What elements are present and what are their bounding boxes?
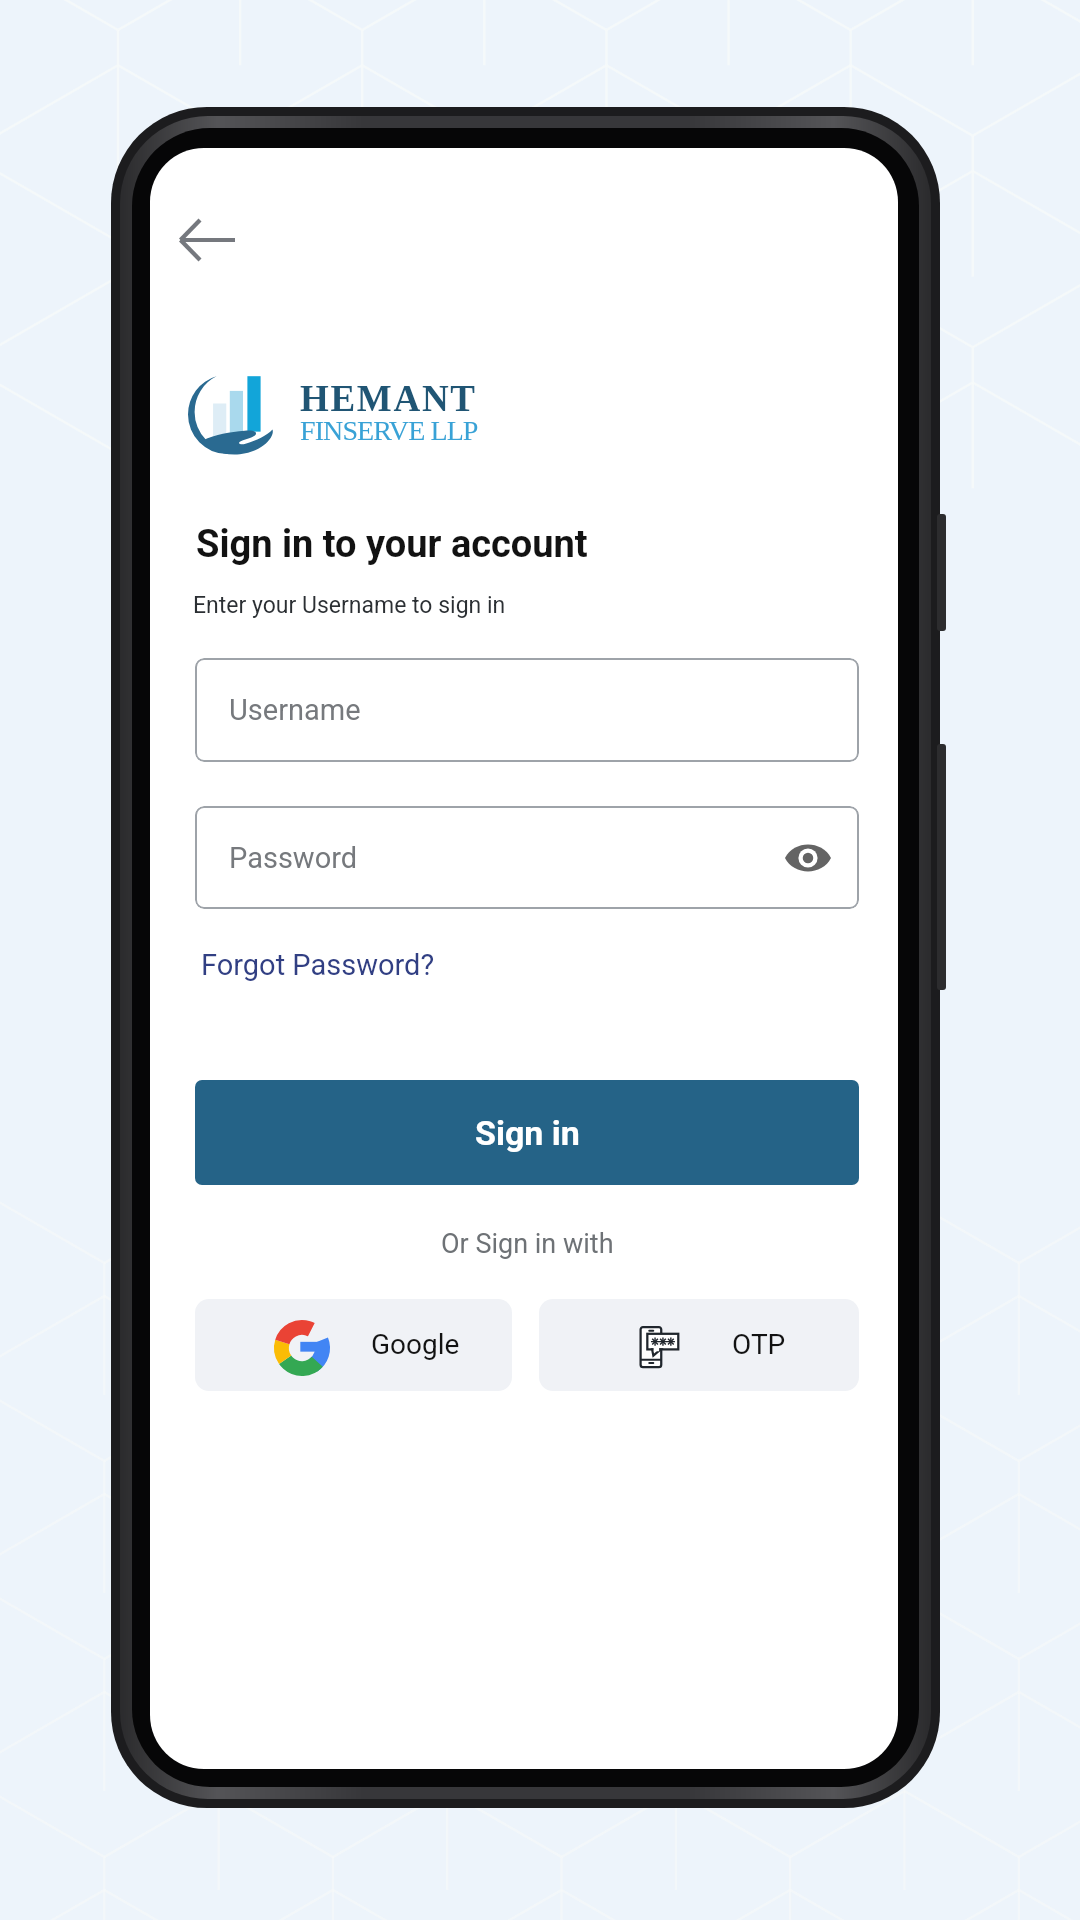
button[interactable]: Show password [778, 828, 838, 888]
button[interactable]: Username [195, 658, 859, 762]
staticText: Password [229, 841, 358, 875]
staticText: FINSERVE LLP [300, 415, 478, 446]
staticText: HEMANT [300, 378, 477, 419]
staticText: Username [229, 693, 361, 727]
button[interactable]: Back [167, 200, 247, 280]
staticText: Google [371, 1328, 460, 1361]
button[interactable]: Google [195, 1299, 512, 1391]
staticText: OTP [732, 1328, 786, 1361]
button[interactable]: Forgot Password? [189, 938, 447, 992]
staticText: Sign in [475, 1113, 580, 1153]
staticText: Enter your Username to sign in [193, 592, 506, 619]
staticText: Or Sign in with [441, 1228, 614, 1260]
button[interactable]: OTP [539, 1299, 859, 1391]
staticText: Sign in to your account [196, 522, 588, 567]
staticText: Forgot Password? [201, 948, 435, 982]
button[interactable]: Sign in [195, 1080, 859, 1185]
button[interactable]: Password [195, 806, 859, 909]
